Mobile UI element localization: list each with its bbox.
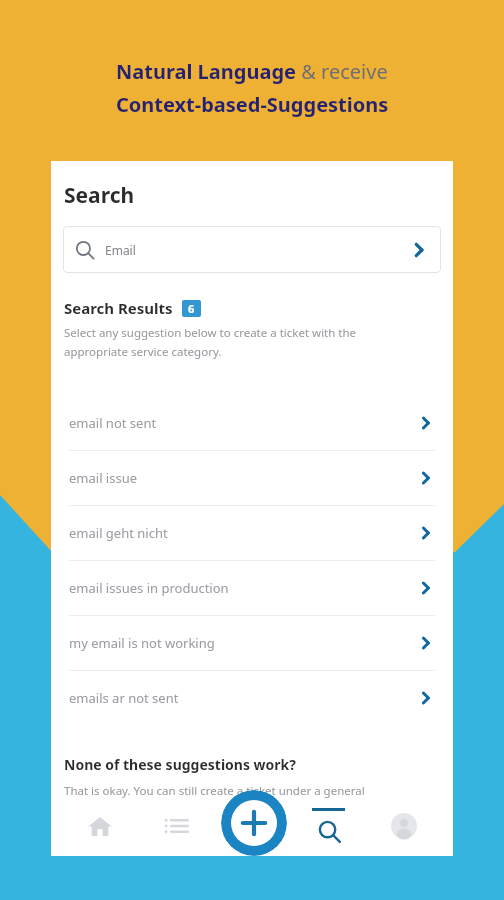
staticText: appropriate service category. <box>64 344 222 360</box>
staticText: Search <box>64 181 135 210</box>
button[interactable]: email not sent <box>51 396 453 450</box>
staticText: & receive <box>296 58 388 85</box>
staticText: Select any suggestion below to create a … <box>64 325 357 341</box>
button[interactable]: Profile <box>378 800 430 852</box>
button[interactable]: emails ar not sent <box>51 671 453 725</box>
button[interactable]: Search <box>302 800 354 852</box>
button[interactable]: Create ticket <box>221 790 287 856</box>
button[interactable]: my email is not working <box>51 616 453 670</box>
staticText: email issues in production <box>69 579 229 597</box>
staticText: email geht nicht <box>69 524 168 542</box>
staticText: email not sent <box>69 414 157 432</box>
button[interactable]: Home <box>74 800 126 852</box>
staticText: 6 <box>188 301 195 316</box>
staticText: Email <box>105 242 136 258</box>
staticText: None of these suggestions work? <box>64 755 296 774</box>
staticText: Natural Language <box>116 58 296 85</box>
staticText: Context-based-Suggestions <box>116 91 389 118</box>
staticText: email issue <box>69 469 138 487</box>
staticText: That is okay. You can still create a tic… <box>64 783 365 799</box>
button[interactable]: Tickets <box>150 800 202 852</box>
button[interactable]: email issue <box>51 451 453 505</box>
staticText: Search Results <box>64 298 173 318</box>
button[interactable]: Email <box>63 226 441 273</box>
button[interactable]: email issues in production <box>51 561 453 615</box>
staticText: my email is not working <box>69 634 215 652</box>
button[interactable]: email geht nicht <box>51 506 453 560</box>
staticText: emails ar not sent <box>69 689 179 707</box>
